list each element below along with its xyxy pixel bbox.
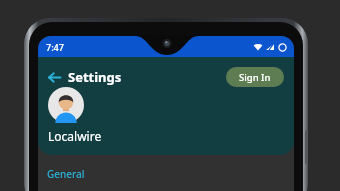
staticText: 7:47 [46,41,64,53]
staticText: Sign In [239,71,271,84]
staticText: Localwire [48,128,102,144]
staticText: Settings [68,68,122,86]
staticText: General [47,167,85,181]
button[interactable]: Back [43,66,65,88]
button[interactable]: Sign In [226,67,284,87]
